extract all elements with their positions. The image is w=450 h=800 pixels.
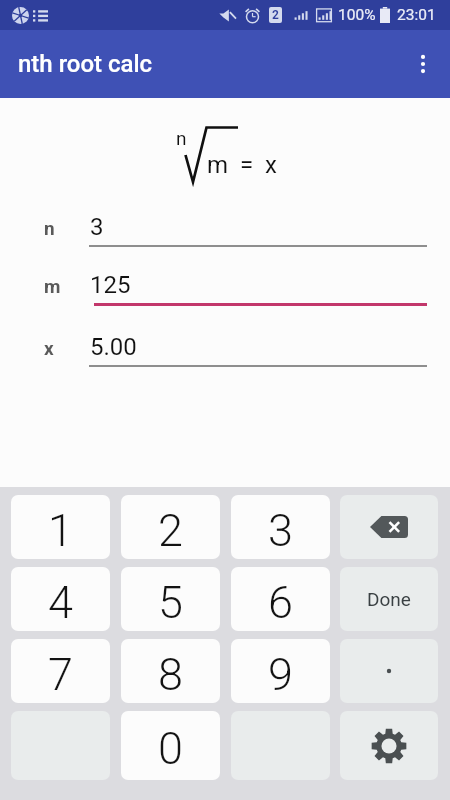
staticText: 0: [158, 722, 183, 775]
staticText: 9: [268, 648, 293, 701]
staticText: 8: [158, 648, 183, 701]
button[interactable]: Backspace: [340, 495, 438, 559]
staticText: n: [176, 127, 187, 149]
staticText: 2: [158, 504, 183, 557]
button[interactable]: Done: [340, 567, 438, 631]
staticText: 125: [90, 271, 131, 299]
staticText: x: [44, 337, 54, 359]
button[interactable]: x: [0, 334, 450, 379]
staticText: 100%: [338, 6, 376, 24]
button[interactable]: 5: [121, 567, 220, 631]
button[interactable]: Decimal point: [340, 639, 438, 703]
button[interactable]: 4: [11, 567, 110, 631]
staticText: 1: [48, 504, 73, 557]
button[interactable]: 2: [121, 495, 220, 559]
staticText: n: [44, 217, 55, 239]
staticText: 23:01: [397, 6, 436, 24]
staticText: 2: [272, 8, 279, 22]
staticText: Done: [367, 588, 411, 610]
button[interactable]: 9: [231, 639, 330, 703]
staticText: 4: [48, 576, 73, 629]
button[interactable]: More options: [399, 40, 447, 88]
button[interactable]: n: [0, 214, 450, 259]
staticText: m: [44, 275, 61, 297]
staticText: 7: [48, 648, 73, 701]
staticText: 5.00: [90, 333, 137, 361]
button[interactable]: Settings: [340, 711, 438, 780]
staticText: m = x: [207, 151, 277, 179]
button[interactable]: 8: [121, 639, 220, 703]
staticText: 5: [158, 576, 183, 629]
button[interactable]: 3: [231, 495, 330, 559]
staticText: 3: [90, 213, 104, 241]
button[interactable]: 1: [11, 495, 110, 559]
button[interactable]: 0: [121, 711, 220, 780]
button[interactable]: 7: [11, 639, 110, 703]
button[interactable]: 6: [231, 567, 330, 631]
staticText: nth root calc: [18, 50, 153, 78]
button[interactable]: m: [0, 272, 450, 317]
staticText: 6: [268, 576, 293, 629]
staticText: 3: [268, 504, 293, 557]
